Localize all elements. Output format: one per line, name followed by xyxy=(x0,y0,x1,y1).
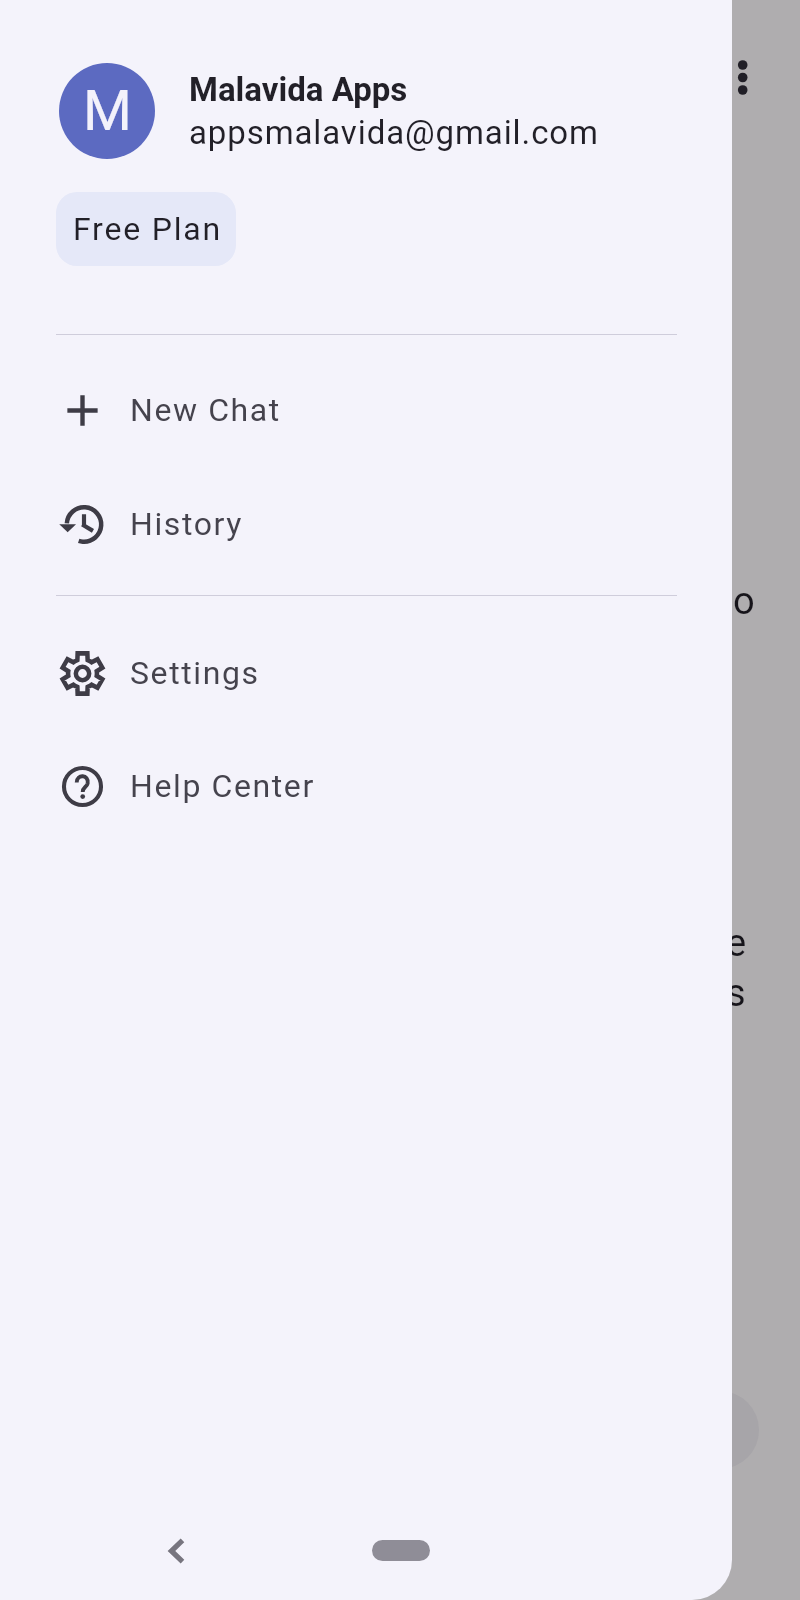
staticText: e xyxy=(726,921,747,966)
staticText: History xyxy=(130,505,243,543)
staticText: o xyxy=(733,579,755,624)
staticText: New Chat xyxy=(130,391,281,429)
button[interactable]: Help Center xyxy=(0,729,732,843)
button[interactable]: Home xyxy=(372,1540,430,1561)
staticText: Settings xyxy=(130,654,260,692)
staticText: M xyxy=(83,78,132,144)
button[interactable]: History xyxy=(0,467,732,581)
staticText: Help Center xyxy=(130,767,315,805)
button[interactable]: More options xyxy=(722,42,770,90)
button[interactable]: Settings xyxy=(0,616,732,730)
staticText: appsmalavida@gmail.com xyxy=(189,113,599,152)
button[interactable]: M xyxy=(0,55,732,167)
staticText: s xyxy=(726,971,746,1016)
staticText: Free Plan xyxy=(73,210,222,248)
button[interactable]: New Chat xyxy=(0,353,732,467)
button[interactable]: Free Plan xyxy=(56,192,236,266)
staticText: Malavida Apps xyxy=(189,70,408,109)
button[interactable]: Back xyxy=(152,1527,200,1575)
